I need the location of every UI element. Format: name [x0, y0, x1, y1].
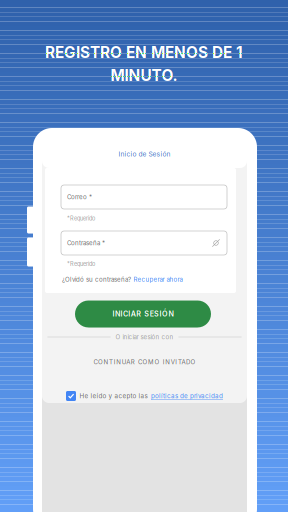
- staticText: O iniciar sesión con: [115, 333, 173, 341]
- staticText: CONTINUAR COMO INVITADO: [93, 358, 196, 366]
- staticText: políticas de privacidad: [151, 392, 223, 400]
- staticText: Correo *: [67, 193, 92, 201]
- staticText: Recuperar ahora: [133, 276, 182, 283]
- staticText: REGISTRO EN MENOS DE 1: [45, 43, 243, 62]
- button[interactable]: Recuperar ahora: [133, 276, 182, 283]
- staticText: ¿Olvidó su contraseña?: [62, 276, 131, 283]
- button[interactable]: He leído y acepto las: [49, 390, 239, 402]
- staticText: *Requerido: [67, 261, 95, 267]
- button[interactable]: CONTINUAR COMO INVITADO: [49, 356, 239, 368]
- staticText: Inicio de Sesión: [118, 150, 170, 158]
- staticText: MINUTO.: [110, 66, 177, 85]
- staticText: INICIAR SESIÓN: [113, 310, 173, 318]
- button[interactable]: INICIAR SESIÓN: [75, 300, 211, 327]
- staticText: Contraseña *: [67, 239, 105, 247]
- staticText: *Requerido: [67, 215, 95, 222]
- staticText: He leído y acepto las: [79, 392, 147, 400]
